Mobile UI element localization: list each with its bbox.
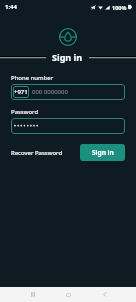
staticText: • • • • • • • •	[14, 123, 39, 130]
button[interactable]: Recover Password	[11, 147, 63, 159]
staticText: Sign in	[92, 148, 114, 157]
staticText: Password	[11, 108, 39, 116]
button[interactable]: • • • • • • • •	[11, 118, 125, 134]
staticText: Sign in	[52, 51, 83, 63]
staticText: 100%	[112, 4, 127, 11]
button[interactable]: Back	[93, 287, 116, 302]
button[interactable]: Sign in	[80, 144, 125, 161]
staticText: Phone number	[11, 74, 54, 82]
staticText: 1:44	[5, 3, 17, 11]
staticText: +971	[14, 88, 28, 96]
staticText: Recover Password	[11, 149, 63, 157]
button[interactable]: +971	[13, 86, 29, 98]
button[interactable]: Recent apps	[21, 287, 44, 302]
staticText: 000 0000000	[32, 88, 68, 96]
button[interactable]: +971	[11, 84, 125, 100]
button[interactable]: Home	[57, 287, 80, 302]
